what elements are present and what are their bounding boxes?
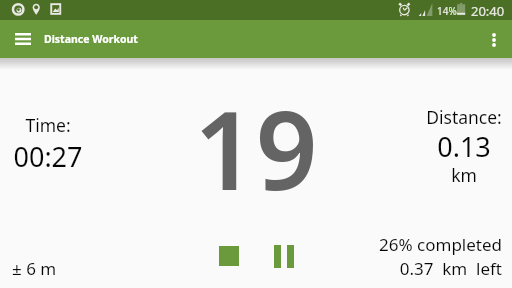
staticText: Time: [0,113,96,137]
staticText: ± 6 m [12,257,57,280]
staticText: 26% completed [300,233,502,256]
staticText: 0.37 km left [300,257,502,280]
staticText: 20:40 [471,2,505,20]
staticText: 19 [194,75,318,222]
staticText: 14% [437,4,457,18]
button[interactable]: Pause [266,238,302,274]
staticText: 00:27 [0,138,96,175]
staticText: Distance Workout [44,32,138,46]
button[interactable]: More options [475,21,512,58]
staticText: 0.13 [404,128,512,165]
button[interactable]: Stop [211,238,247,274]
staticText: Distance: [404,105,512,129]
button[interactable]: Open navigation drawer [4,20,41,57]
staticText: km [404,163,512,187]
